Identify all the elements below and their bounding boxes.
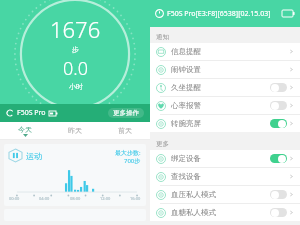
staticText: 转腕亮屏 — [171, 119, 201, 128]
button[interactable]: 久坐提醒 toggle — [270, 83, 287, 92]
button[interactable]: 前天 — [100, 122, 150, 139]
other: Device — [155, 9, 164, 18]
staticText: 绑定设备 — [171, 154, 201, 163]
staticText: 闹钟设置 — [171, 65, 201, 74]
staticText: 运动 — [26, 151, 42, 161]
staticText: 00:00 — [9, 196, 20, 201]
button[interactable]: 闹钟设置 — [150, 61, 300, 78]
staticText: 08:00 — [70, 196, 81, 201]
button[interactable]: 转腕亮屏 toggle — [270, 119, 287, 128]
button[interactable]: 久坐提醒 — [150, 79, 300, 96]
staticText: 小时 — [69, 82, 83, 91]
button[interactable]: 心率报警 — [150, 97, 300, 114]
button[interactable]: 运动 — [4, 144, 146, 206]
staticText: 700步 — [124, 157, 141, 165]
staticText: 步 — [72, 45, 79, 54]
other: Sync — [6, 109, 14, 117]
staticText: 昨天 — [68, 126, 82, 135]
button[interactable]: 血压私人模式 — [150, 186, 300, 203]
staticText: 信息提醒 — [171, 47, 201, 56]
staticText: 今天 — [18, 125, 32, 134]
staticText: 血压私人模式 — [171, 190, 216, 199]
staticText: 久坐提醒 — [171, 83, 201, 92]
button[interactable]: 转腕亮屏 — [150, 115, 300, 132]
staticText: 04:00 — [39, 196, 50, 201]
staticText: 最大步数: — [115, 149, 141, 157]
button[interactable]: 心率报警 toggle — [270, 101, 287, 110]
button[interactable]: 信息提醒 — [150, 43, 300, 60]
staticText: F50S Pro[E3:F8][6538][02.15.03] — [167, 9, 271, 19]
button[interactable]: 绑定设备 toggle — [270, 154, 287, 163]
button[interactable]: 绑定设备 — [150, 150, 300, 167]
staticText: 0.0 — [63, 56, 88, 81]
staticText: 前天 — [118, 126, 132, 135]
staticText: 16:00 — [130, 196, 141, 201]
button[interactable]: 更多操作 — [108, 108, 144, 118]
button[interactable]: 血糖私人模式 toggle — [270, 208, 287, 217]
button[interactable]: 血糖私人模式 — [150, 204, 300, 221]
staticText: 更多操作 — [113, 109, 139, 117]
button[interactable]: 今天 — [0, 122, 50, 139]
staticText: 血糖私人模式 — [171, 208, 216, 217]
staticText: 心率报警 — [171, 101, 201, 110]
button[interactable]: 昨天 — [50, 122, 100, 139]
staticText: 1676 — [50, 14, 101, 44]
staticText: 查找设备 — [171, 172, 201, 181]
button[interactable]: 血压私人模式 toggle — [270, 190, 287, 199]
staticText: F50S Pro — [17, 108, 46, 118]
staticText: 更多 — [156, 140, 169, 148]
button[interactable]: 查找设备 — [150, 168, 300, 185]
staticText: 12:00 — [100, 196, 111, 201]
staticText: 通知 — [156, 33, 169, 41]
